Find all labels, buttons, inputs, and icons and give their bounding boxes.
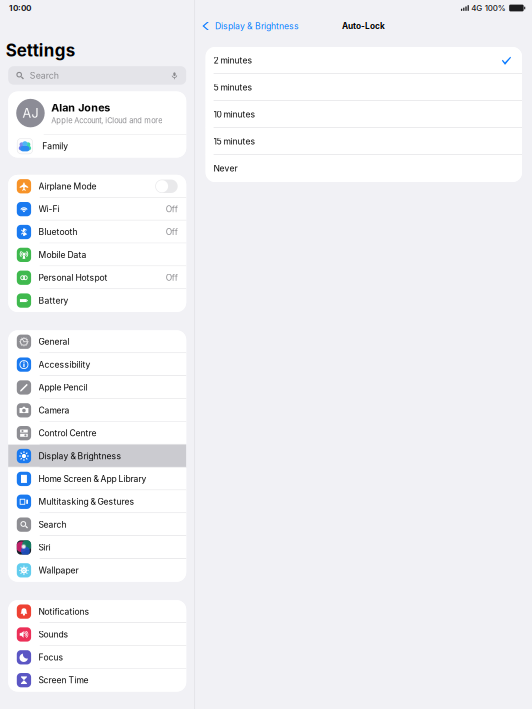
button[interactable]: Display & Brightness [195,17,305,35]
button[interactable]: 2 minutes [206,47,522,74]
staticText: Apple Account, iCloud and more [51,116,162,125]
staticText: Accessibility [39,359,91,370]
staticText: Search [39,519,67,530]
button[interactable]: AJ [8,91,186,135]
button[interactable]: Control Centre [8,422,186,445]
staticText: Off [166,204,178,214]
button[interactable]: Display & Brightness [8,445,186,467]
staticText: Sounds [39,629,69,640]
staticText: AJ [22,105,38,121]
staticText: Notifications [39,606,90,617]
button[interactable]: Siri [8,536,186,559]
staticText: Alan Jones [51,101,110,114]
button[interactable]: Screen Time [8,669,186,692]
button[interactable]: Never [206,155,522,182]
staticText: General [39,337,70,347]
staticText: Siri [39,542,51,553]
button[interactable]: 5 minutes [206,74,522,101]
button[interactable]: Home Screen & App Library [8,467,186,490]
staticText: 15 minutes [214,136,256,147]
staticText: Apple Pencil [39,382,88,393]
staticText: Display & Brightness [39,451,122,461]
staticText: 5 minutes [214,82,253,93]
button[interactable]: General [8,330,186,353]
staticText: Personal Hotspot [39,273,108,283]
button[interactable]: Notifications [8,600,186,623]
button[interactable]: Personal Hotspot [8,266,186,289]
staticText: Home Screen & App Library [39,474,147,484]
staticText: Off [166,273,178,283]
staticText: Control Centre [39,428,97,438]
staticText: Focus [39,652,64,662]
staticText: Family [42,141,68,151]
staticText: 10 minutes [214,109,256,120]
button[interactable]: Family [8,135,186,158]
button[interactable]: Search [8,513,186,536]
staticText: Battery [39,295,69,306]
button[interactable]: Multitasking & Gestures [8,490,186,513]
staticText: Airplane Mode [39,181,97,191]
button[interactable]: Wi-Fi [8,198,186,221]
staticText: 4G [471,3,482,13]
staticText: Camera [39,405,70,415]
staticText: Wi-Fi [39,204,60,214]
staticText: Wallpaper [39,565,79,575]
staticText: Never [214,163,238,174]
staticText: Off [166,227,178,237]
staticText: Search [30,70,59,81]
button[interactable]: Focus [8,646,186,669]
staticText: 10:00 [9,3,31,13]
button[interactable]: Wallpaper [8,559,186,582]
button[interactable]: Accessibility [8,353,186,376]
staticText: Screen Time [39,675,89,685]
button[interactable]: Apple Pencil [8,376,186,399]
button[interactable]: Airplane Mode [8,175,186,198]
staticText: Settings [6,40,75,61]
staticText: 2 minutes [214,55,253,66]
staticText: Mobile Data [39,250,87,260]
button[interactable]: Sounds [8,623,186,646]
staticText: 100% [485,3,506,13]
button[interactable]: Battery [8,289,186,312]
staticText: Bluetooth [39,227,78,237]
button[interactable]: Mobile Data [8,243,186,266]
button[interactable]: 15 minutes [206,128,522,155]
staticText: Multitasking & Gestures [39,497,135,507]
button[interactable]: 10 minutes [206,101,522,128]
button[interactable]: Bluetooth [8,221,186,243]
staticText: Auto-Lock [342,21,385,31]
staticText: Display & Brightness [215,21,299,31]
button[interactable]: Camera [8,399,186,422]
